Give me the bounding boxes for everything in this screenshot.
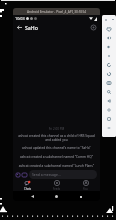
button[interactable]: Overview	[102, 114, 116, 123]
button[interactable]: Send a message...	[29, 170, 97, 179]
button[interactable]: Recents	[76, 192, 85, 201]
button[interactable]: Back	[15, 23, 24, 32]
button[interactable]: Volume down	[102, 42, 116, 51]
staticText: Chats	[24, 187, 31, 191]
button[interactable]: Zoom	[102, 87, 116, 96]
staticText: ashcat created this channel as a child o…	[17, 134, 96, 142]
button[interactable]: Back	[28, 192, 37, 201]
button[interactable]: Home	[102, 105, 116, 114]
staticText: Feeds	[53, 187, 61, 191]
staticText: ashcat created a subchannel named "Comm …	[17, 155, 96, 159]
button[interactable]: Chats	[13, 180, 42, 191]
staticText: 10:03	[15, 16, 25, 21]
button[interactable]: Feeds	[42, 180, 71, 191]
button[interactable]: GIF	[21, 171, 28, 178]
staticText: ashcat created a subchannel named "Lunch…	[17, 164, 96, 168]
staticText: Android Emulator - Pixel_4_API_30:5554	[27, 10, 87, 14]
button[interactable]: Close	[104, 18, 107, 21]
button[interactable]: You	[71, 180, 100, 191]
button[interactable]: Brightness	[102, 51, 116, 60]
button[interactable]: Back	[102, 96, 116, 105]
button[interactable]: Rotate left	[102, 60, 116, 69]
button[interactable]: Add attachment	[14, 171, 21, 178]
staticText: SaHo	[25, 24, 38, 31]
staticText: You	[83, 187, 88, 191]
button[interactable]: Volume up	[102, 33, 116, 42]
button[interactable]: Screenshot	[102, 78, 116, 87]
button[interactable]: Home	[52, 192, 61, 201]
staticText: Fri 2:00 PM	[13, 127, 100, 131]
button[interactable]: Power	[102, 24, 116, 33]
button[interactable]: Channel info	[89, 23, 97, 31]
staticText: Send a message...	[32, 172, 61, 177]
staticText: ashcat updated this channel's name to "S…	[17, 146, 96, 150]
button[interactable]: Rotate right	[102, 69, 116, 78]
button[interactable]: Minimize	[111, 18, 114, 21]
button[interactable]: More options	[102, 123, 116, 132]
